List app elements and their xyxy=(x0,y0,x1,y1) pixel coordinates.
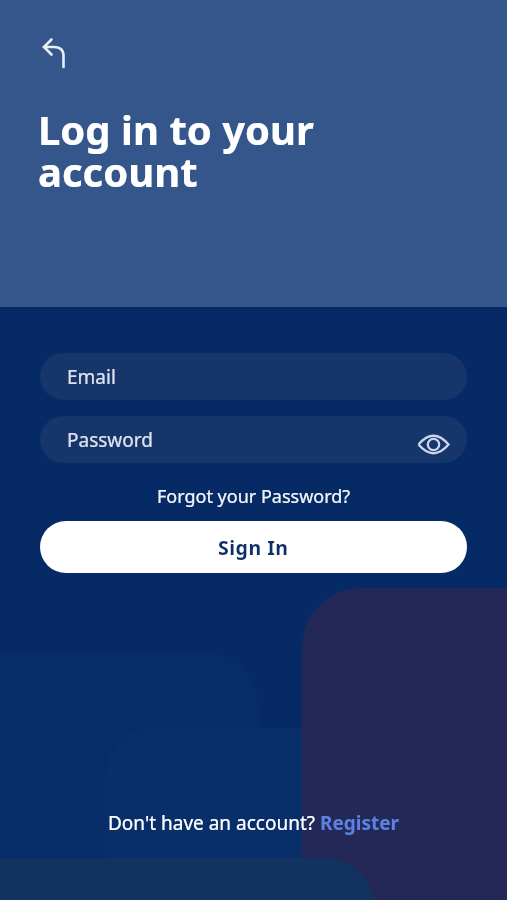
staticText: Don't have an account? xyxy=(108,810,320,836)
button[interactable] xyxy=(28,26,74,72)
staticText: Register xyxy=(320,810,400,836)
staticText: Email xyxy=(67,364,116,390)
button[interactable]: Register xyxy=(320,810,400,836)
staticText: Sign In xyxy=(218,534,289,561)
button[interactable]: Sign In xyxy=(40,521,467,573)
staticText: Log in to your account xyxy=(38,102,314,199)
button[interactable]: Password xyxy=(40,416,467,463)
button[interactable]: Forgot your Password? xyxy=(0,484,507,508)
staticText: Password xyxy=(67,427,153,453)
button[interactable] xyxy=(414,425,452,463)
button[interactable]: Email xyxy=(40,353,467,400)
staticText: Forgot your Password? xyxy=(157,484,351,508)
